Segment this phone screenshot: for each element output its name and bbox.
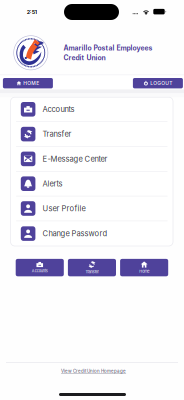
button[interactable]: Accounts: [16, 259, 64, 276]
button[interactable]: Alerts: [11, 172, 173, 196]
button[interactable]: Transfer: [68, 259, 116, 276]
staticText: Credit Union: [64, 54, 106, 62]
staticText: Accounts: [32, 269, 48, 273]
staticText: 2:51: [27, 9, 37, 15]
staticText: LOGOUT: [150, 80, 172, 86]
button[interactable]: Change Password: [11, 221, 173, 246]
button[interactable]: Home: [120, 259, 168, 276]
button[interactable]: Transfer: [11, 122, 173, 147]
staticText: Transfer: [43, 129, 72, 139]
staticText: Amarillo Postal Employees: [64, 44, 153, 52]
staticText: HOME: [23, 80, 39, 86]
button[interactable]: Accounts: [11, 97, 173, 122]
button[interactable]: E-Message Center: [11, 147, 173, 172]
staticText: Accounts: [43, 105, 75, 114]
button[interactable]: User Profile: [11, 196, 173, 221]
staticText: E-Message Center: [43, 154, 108, 163]
staticText: Alerts: [43, 179, 63, 188]
staticText: View Credit Union Homepage: [61, 368, 126, 374]
button[interactable]: View Credit Union Homepage: [61, 368, 126, 374]
button[interactable]: Home: [3, 78, 53, 88]
button[interactable]: Log out: [133, 78, 183, 88]
staticText: Change Password: [43, 229, 108, 238]
staticText: Transfer: [85, 269, 98, 274]
staticText: Home: [139, 269, 149, 274]
staticText: User Profile: [43, 204, 86, 213]
